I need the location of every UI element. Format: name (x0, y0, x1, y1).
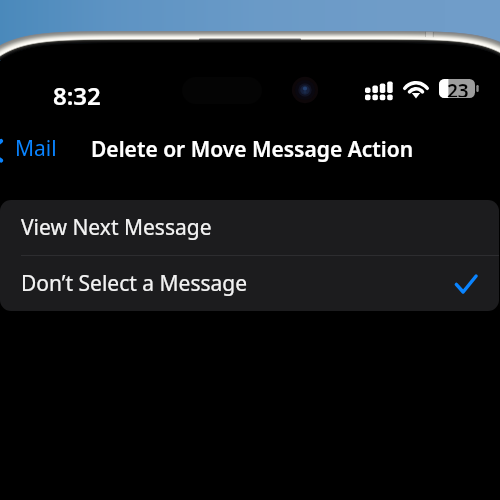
staticText: 8:32 (53, 79, 101, 112)
staticText: View Next Message (21, 213, 212, 242)
staticText: Delete or Move Message Action (91, 135, 414, 164)
staticText: 23 (447, 78, 469, 97)
button[interactable]: View Next Message (0, 200, 499, 255)
staticText: Don’t Select a Message (21, 269, 248, 298)
button[interactable]: Don’t Select a Message (0, 256, 499, 311)
staticText: Mail (15, 134, 57, 163)
button[interactable]: Back to Mail (0, 127, 70, 171)
